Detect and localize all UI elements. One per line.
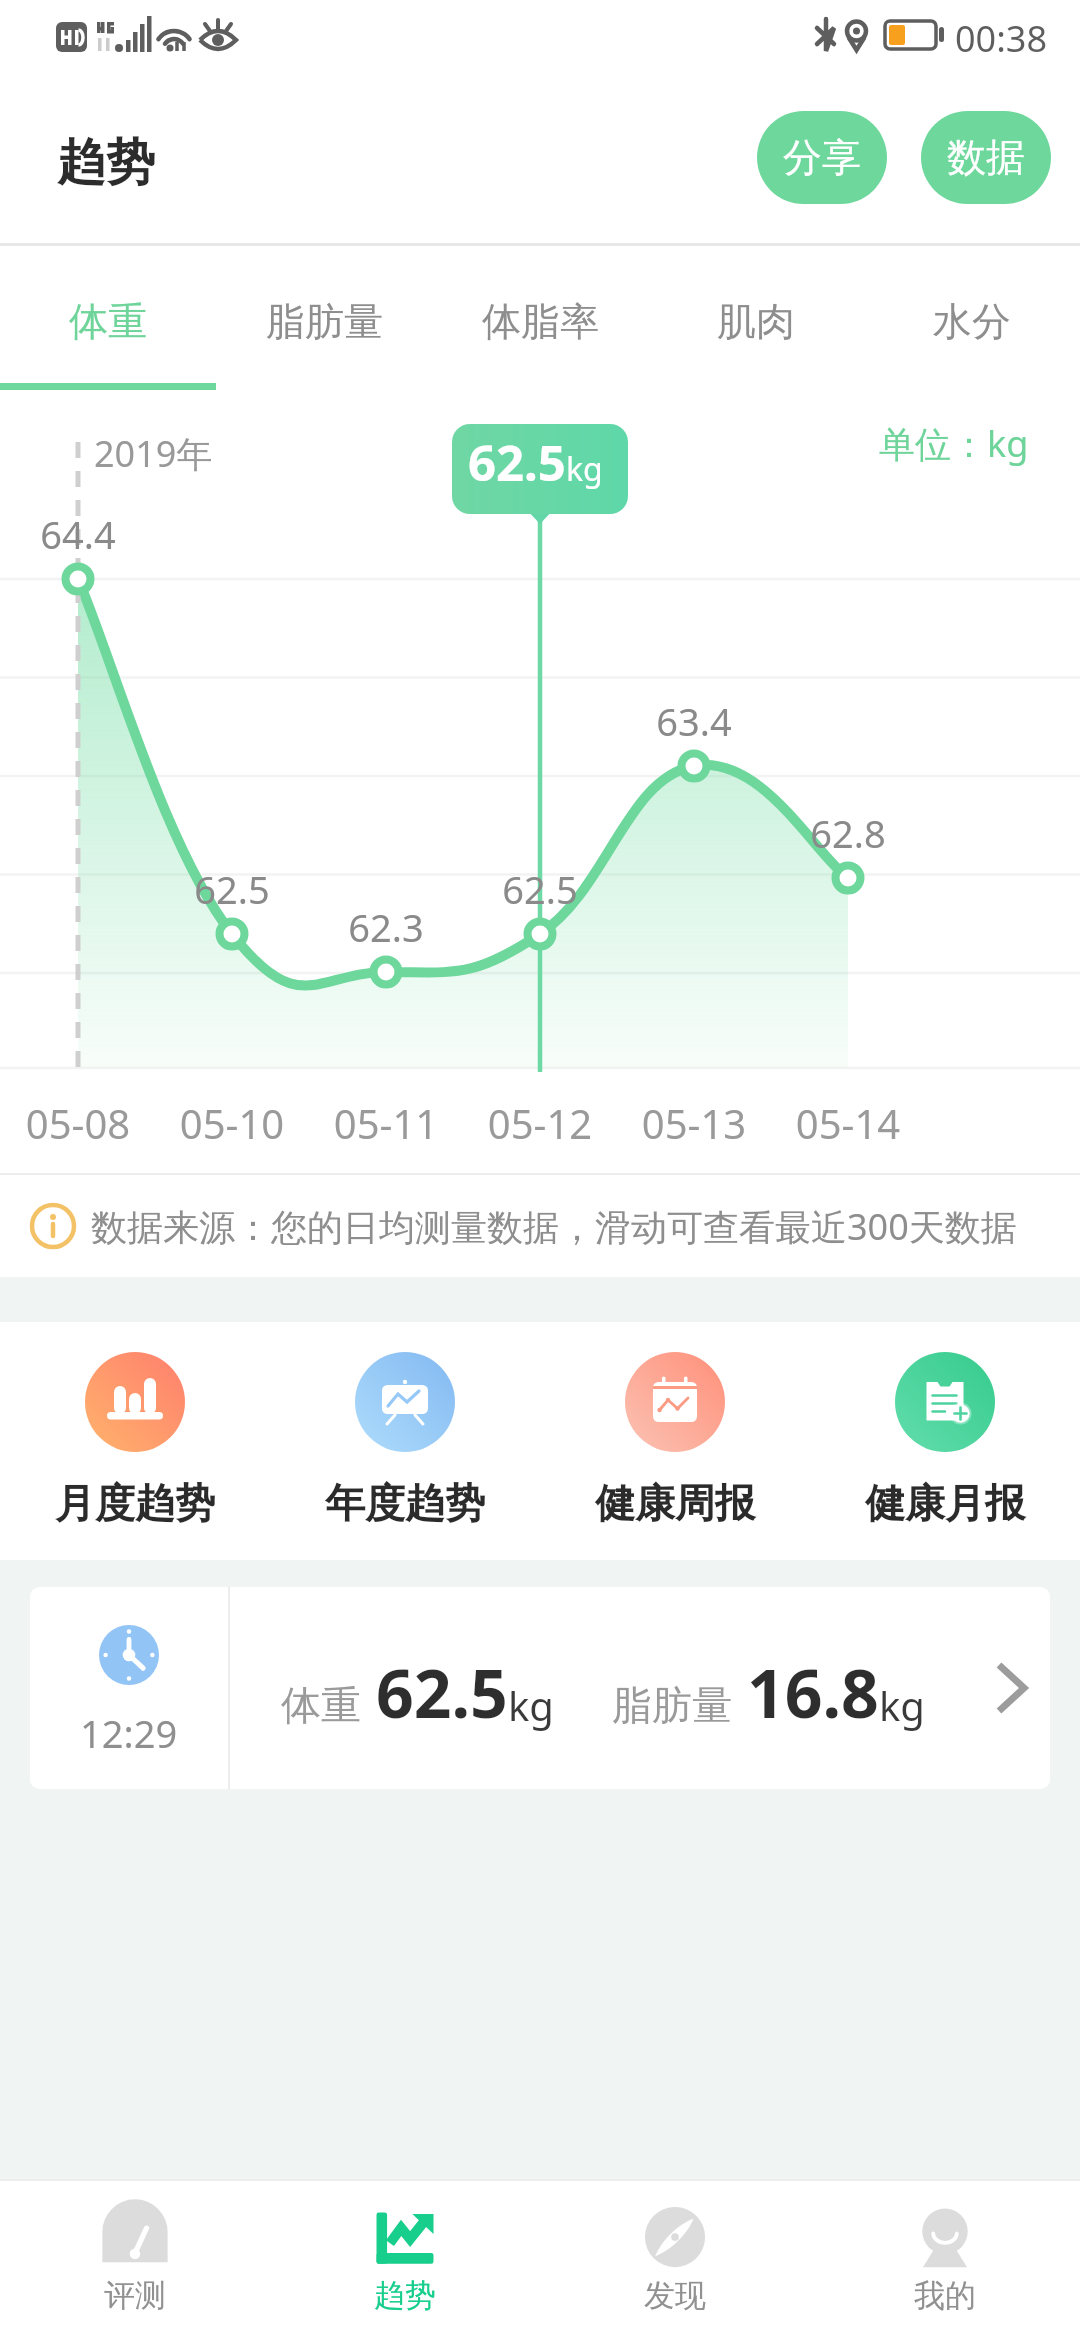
staticText: 我的 xyxy=(914,2276,976,2315)
button[interactable]: 数据 xyxy=(921,111,1051,204)
staticText: 发现 xyxy=(644,2276,706,2315)
staticText: 趋势 xyxy=(374,2276,436,2315)
staticText: 分享 xyxy=(783,133,861,182)
button[interactable]: 月度趋势 xyxy=(0,1322,270,1560)
staticText: 数据来源：您的日均测量数据，滑动可查看最近300天数据 xyxy=(91,1202,1017,1251)
staticText: 健康月报 xyxy=(865,1478,1025,1528)
button[interactable]: 评测 xyxy=(0,2181,270,2340)
button[interactable]: 健康月报 xyxy=(810,1322,1080,1560)
staticText: 数据 xyxy=(947,133,1025,182)
staticText: 62.5 xyxy=(460,863,620,915)
button[interactable]: 水分 xyxy=(864,249,1080,393)
staticText: 体重 xyxy=(281,1680,361,1730)
staticText: 62.8 xyxy=(768,807,928,859)
staticText: 脂肪量 xyxy=(266,297,383,346)
button[interactable]: 健康周报 xyxy=(540,1322,810,1560)
button[interactable]: 我的 xyxy=(810,2181,1080,2340)
staticText: 水分 xyxy=(933,297,1011,346)
staticText: 趋势 xyxy=(57,132,155,194)
button[interactable]: 趋势 xyxy=(270,2181,540,2340)
staticText: 05-13 xyxy=(614,1096,774,1150)
staticText: 月度趋势 xyxy=(55,1478,215,1528)
staticText: 评测 xyxy=(104,2276,166,2315)
button[interactable]: 体重 xyxy=(0,249,216,393)
staticText: 健康周报 xyxy=(595,1478,755,1528)
staticText: 05-08 xyxy=(0,1096,158,1150)
staticText: 脂肪量 xyxy=(612,1680,732,1730)
staticText: 05-14 xyxy=(768,1096,928,1150)
staticText: 62.5 xyxy=(152,863,312,915)
staticText: 62.5 xyxy=(468,429,566,496)
staticText: 05-11 xyxy=(306,1096,466,1150)
staticText: 63.4 xyxy=(614,695,774,747)
staticText: 年度趋势 xyxy=(325,1478,485,1528)
staticText: 12:29 xyxy=(80,1707,178,1759)
button[interactable]: 分享 xyxy=(757,111,887,204)
staticText: 00:38 xyxy=(955,14,1048,63)
staticText: 体脂率 xyxy=(482,297,599,346)
button[interactable]: 脂肪量 xyxy=(216,249,432,393)
staticText: 05-10 xyxy=(152,1096,312,1150)
button[interactable]: 肌肉 xyxy=(648,249,864,393)
button[interactable]: 体脂率 xyxy=(432,249,648,393)
staticText: 2019年 xyxy=(94,429,213,478)
button[interactable]: 年度趋势 xyxy=(270,1322,540,1560)
staticText: kg xyxy=(879,1678,925,1732)
staticText: 05-12 xyxy=(460,1096,620,1150)
staticText: 单位：kg xyxy=(879,419,1029,468)
staticText: 16.8 xyxy=(747,1647,879,1737)
staticText: kg xyxy=(566,447,603,491)
staticText: 62.3 xyxy=(306,901,466,953)
button[interactable]: 发现 xyxy=(540,2181,810,2340)
staticText: 62.5 xyxy=(376,1647,508,1737)
staticText: kg xyxy=(508,1678,554,1732)
staticText: 体重 xyxy=(69,297,147,346)
staticText: 64.4 xyxy=(0,508,158,560)
button[interactable]: 12:29 xyxy=(30,1587,1050,1789)
staticText: 肌肉 xyxy=(717,297,795,346)
